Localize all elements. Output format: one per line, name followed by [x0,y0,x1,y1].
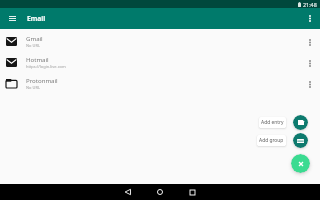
button[interactable]: Entry options [300,32,320,53]
button[interactable]: Entry options [300,53,320,74]
button[interactable]: Add entry [293,115,308,130]
staticText: No URL [26,85,41,90]
button[interactable]: Hotmail [0,53,320,74]
staticText: Hotmail [26,55,49,63]
staticText: Add group [259,137,284,144]
staticText: Add entry [261,119,284,126]
button[interactable]: More options [300,8,320,29]
button[interactable]: Close menu [291,154,310,173]
staticText: Protonmail [26,76,58,84]
button[interactable]: Entry options [300,74,320,95]
button[interactable]: Gmail [0,32,320,53]
staticText: https://login.live.com [26,64,66,69]
button[interactable]: Navigation menu [0,8,24,29]
button[interactable]: Add entry [259,117,286,128]
staticText: No URL [26,43,41,48]
staticText: Gmail [26,34,43,42]
staticText: 21:48 [303,1,317,8]
button[interactable]: Add group [293,133,308,148]
staticText: Email [27,14,46,23]
button[interactable]: Add group [257,135,286,146]
button[interactable]: Back [112,184,144,200]
button[interactable]: Protonmail [0,74,320,95]
button[interactable]: Home [144,184,176,200]
button[interactable]: Recent apps [176,184,208,200]
